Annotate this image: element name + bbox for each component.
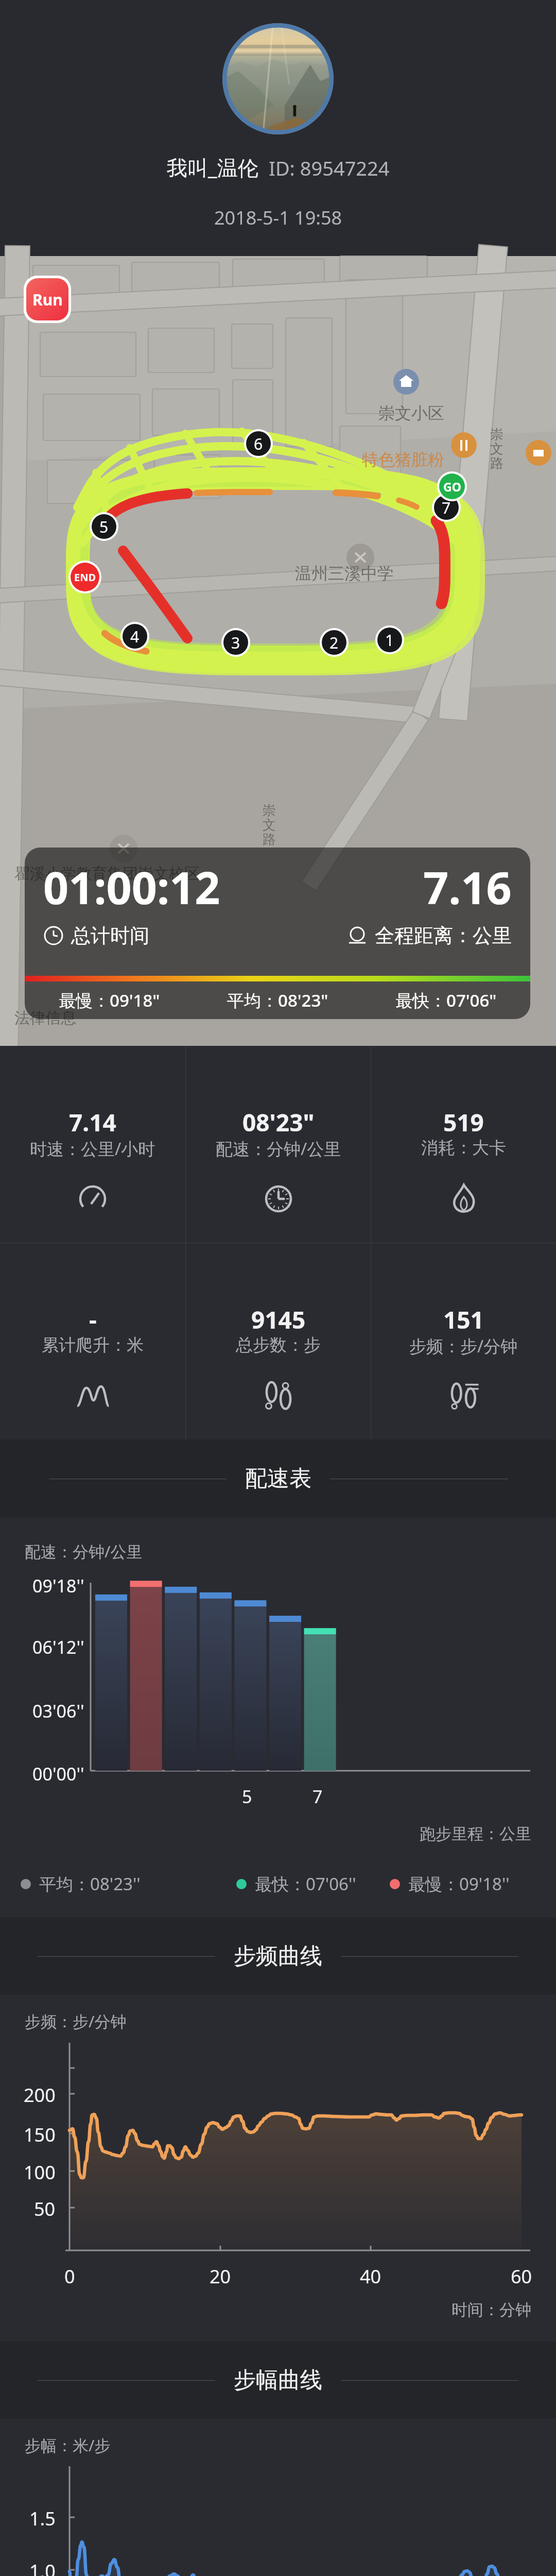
button[interactable]: 08'23" [186, 1046, 371, 1243]
staticText: 崇 文 路 [490, 426, 503, 472]
staticText: 09'18'' [32, 1574, 84, 1598]
staticText: 最慢：09'18'' [408, 1872, 510, 1895]
staticText: 消耗：大卡 [421, 1137, 506, 1159]
staticText: 01:00:12 [43, 857, 220, 917]
staticText: 1 [385, 630, 394, 651]
staticText: 崇 文 路 [263, 802, 276, 848]
staticText: 0 [64, 2264, 75, 2289]
staticText: 5 [242, 1785, 252, 1808]
staticText: 7 [442, 497, 451, 518]
staticText: ID: 89547224 [269, 155, 390, 181]
staticText: 时间：分钟 [451, 2300, 531, 2320]
staticText: 2 [329, 632, 339, 653]
staticText: 平均：08'23" [227, 989, 328, 1012]
staticText: 7 [312, 1785, 323, 1808]
staticText: END [74, 570, 96, 584]
staticText: 步频：步/分钟 [409, 1334, 518, 1358]
button[interactable]: 最快：07'06'' [236, 1872, 356, 1895]
staticText: 法律信息 [14, 1008, 76, 1028]
staticText: 步幅：米/步 [25, 2434, 111, 2456]
staticText: 60 [511, 2264, 532, 2289]
staticText: 特色猪脏粉 [362, 449, 444, 470]
staticText: 519 [443, 1106, 484, 1139]
button[interactable]: User avatar [222, 23, 334, 134]
staticText: 全程距离：公里 [375, 923, 512, 948]
button[interactable]: 7.14 [0, 1046, 185, 1243]
staticText: 瞿溪小学教育集团崇文校区 [14, 864, 200, 884]
staticText: 4 [130, 626, 140, 647]
staticText: 2018-5-1 19:58 [214, 205, 342, 230]
staticText: 151 [443, 1303, 484, 1336]
button[interactable]: 519 [371, 1046, 556, 1243]
staticText: 累计爬升：米 [42, 1334, 144, 1356]
staticText: 时速：公里/小时 [30, 1137, 155, 1160]
staticText: 7.14 [69, 1106, 116, 1139]
staticText: Run [32, 289, 63, 310]
staticText: 20 [210, 2264, 231, 2289]
staticText: GO [443, 479, 461, 495]
staticText: 9145 [251, 1303, 306, 1336]
staticText: 步频：步/分钟 [25, 2010, 127, 2032]
staticText: 步频曲线 [234, 1942, 322, 1970]
staticText: 40 [360, 2264, 381, 2289]
staticText: 1.5 [29, 2506, 56, 2531]
button[interactable]: 9145 [186, 1243, 371, 1439]
staticText: 3 [231, 632, 240, 653]
staticText: 1.0 [29, 2558, 56, 2576]
staticText: 08'23" [242, 1106, 315, 1139]
staticText: 150 [24, 2122, 56, 2147]
staticText: 50 [34, 2196, 56, 2222]
staticText: 100 [24, 2160, 56, 2185]
staticText: 5 [99, 516, 109, 537]
staticText: 06'12'' [32, 1635, 84, 1659]
button[interactable]: 平均：08'23'' [21, 1872, 141, 1895]
staticText: 崇文小区 [378, 403, 444, 423]
staticText: 200 [24, 2082, 56, 2108]
button[interactable]: 151 [371, 1243, 556, 1439]
staticText: 最快：07'06" [395, 989, 497, 1012]
staticText: 配速：分钟/公里 [216, 1137, 341, 1160]
staticText: 6 [254, 433, 263, 454]
staticText: - [89, 1303, 97, 1336]
staticText: 平均：08'23'' [39, 1872, 141, 1895]
staticText: 最快：07'06'' [255, 1872, 356, 1895]
staticText: 7.16 [423, 857, 512, 917]
button[interactable]: Joyrun [26, 278, 68, 320]
staticText: 配速：分钟/公里 [25, 1540, 143, 1562]
staticText: 跑步里程：公里 [420, 1824, 531, 1844]
staticText: 00'00'' [32, 1762, 84, 1786]
staticText: 总步数：步 [236, 1334, 321, 1356]
button[interactable]: - [0, 1243, 185, 1439]
staticText: 温州三溪中学 [295, 563, 394, 584]
staticText: 最慢：09'18" [59, 989, 160, 1012]
staticText: 03'06'' [32, 1699, 84, 1723]
staticText: 配速表 [245, 1465, 311, 1493]
staticText: 总计时间 [71, 923, 149, 948]
button[interactable]: 最慢：09'18'' [390, 1872, 510, 1895]
staticText: 我叫_温伦 [167, 153, 258, 181]
staticText: 步幅曲线 [234, 2366, 322, 2394]
